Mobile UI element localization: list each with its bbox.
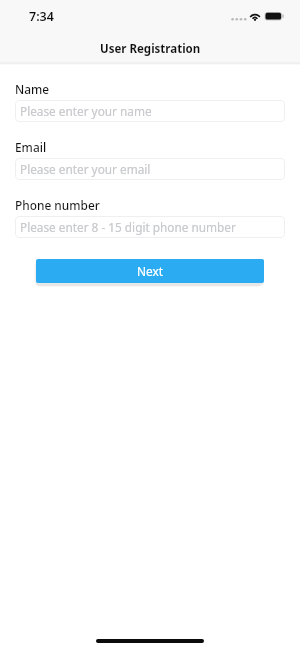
staticText: Phone number (15, 197, 100, 213)
staticText: User Registration (100, 41, 201, 57)
staticText: Please enter 8 - 15 digit phone number (20, 219, 236, 235)
button[interactable]: Please enter your email (15, 158, 285, 180)
button[interactable]: Please enter your name (15, 100, 285, 122)
button[interactable]: Please enter 8 - 15 digit phone number (15, 216, 285, 238)
button[interactable]: Next (36, 259, 264, 283)
staticText: Please enter your email (20, 161, 151, 177)
other: Cellular signal, Wi-Fi and battery statu… (230, 9, 286, 23)
staticText: Please enter your name (20, 103, 152, 119)
staticText: 7:34 (29, 8, 54, 25)
staticText: Next (137, 263, 164, 279)
staticText: Email (15, 139, 47, 155)
staticText: Name (15, 81, 50, 97)
